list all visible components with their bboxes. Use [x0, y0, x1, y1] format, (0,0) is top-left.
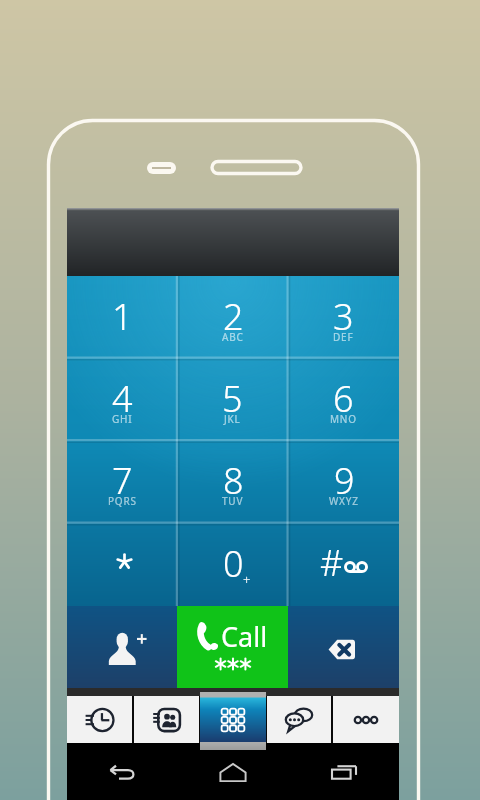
button[interactable]: # [288, 523, 399, 606]
button[interactable]: Back [67, 743, 177, 800]
button[interactable]: 5 [177, 358, 288, 440]
staticText: 5 [222, 374, 243, 423]
staticText: 8 [223, 456, 244, 505]
button[interactable]: Recents [288, 743, 399, 800]
button[interactable]: Home [177, 743, 288, 800]
button[interactable]: Messages [267, 696, 331, 743]
button[interactable]: Recent calls [67, 696, 132, 743]
staticText: DEF [333, 330, 354, 344]
button[interactable]: Contacts [134, 696, 199, 743]
button[interactable]: 6 [288, 358, 399, 440]
staticText: # [320, 538, 344, 587]
button[interactable]: Call [177, 606, 288, 688]
staticText: 4 [112, 374, 133, 423]
staticText: ABC [222, 330, 244, 344]
staticText: 9 [334, 456, 355, 505]
staticText: PQRS [108, 494, 137, 508]
staticText: 0 [223, 539, 244, 588]
button[interactable]: 0 [177, 523, 288, 606]
button[interactable]: 3 [288, 276, 399, 358]
button[interactable]: Add contact [67, 606, 177, 688]
staticText: 2 [223, 292, 244, 341]
staticText: MNO [330, 412, 357, 426]
staticText: JKL [224, 412, 241, 426]
button[interactable]: Dialpad [200, 692, 266, 750]
staticText: 7 [112, 456, 133, 505]
staticText: 3 [333, 292, 354, 341]
button[interactable]: 9 [288, 440, 399, 523]
button[interactable]: 7 [67, 440, 177, 523]
staticText: 6 [333, 374, 354, 423]
button[interactable]: More [333, 696, 399, 743]
button[interactable]: 8 [177, 440, 288, 523]
staticText: GHI [112, 412, 133, 426]
staticText: TUV [222, 494, 244, 508]
button[interactable]: Backspace [288, 606, 399, 688]
staticText: + [243, 571, 251, 589]
staticText: WXYZ [329, 494, 359, 508]
button[interactable]: 4 [67, 358, 177, 440]
staticText: 1 [112, 292, 133, 341]
button[interactable] [67, 523, 177, 606]
button[interactable]: 2 [177, 276, 288, 358]
staticText: Call [221, 618, 268, 655]
button[interactable]: 1 [67, 276, 177, 358]
